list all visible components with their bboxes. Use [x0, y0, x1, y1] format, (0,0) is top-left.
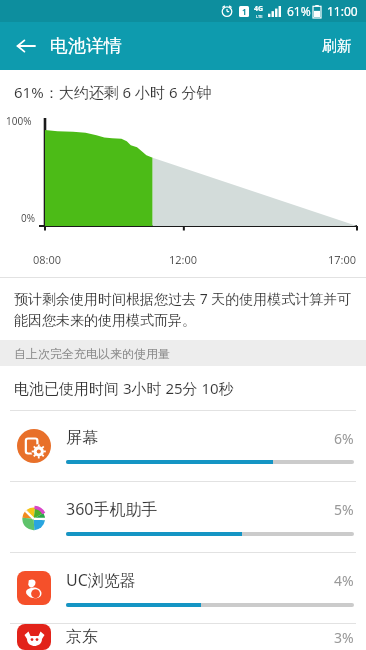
staticText: 12:00 [169, 252, 198, 267]
button[interactable]: 屏幕 [0, 411, 366, 481]
staticText: 6% [334, 429, 354, 448]
button[interactable]: UC浏览器 [0, 553, 366, 623]
staticText: UC浏览器 [66, 569, 334, 591]
staticText: 自上次完全充电以来的使用量 [14, 346, 170, 361]
staticText: 电池已使用时间 3小时 25分 10秒 [14, 378, 234, 398]
staticText: 4% [334, 571, 354, 590]
staticText: 电池详情 [50, 35, 122, 58]
staticText: 3% [334, 628, 354, 647]
staticText: 刷新 [322, 37, 352, 56]
staticText: LTE [256, 14, 263, 19]
staticText: 4G [254, 4, 264, 14]
staticText: 京东 [66, 627, 334, 647]
button[interactable]: 360手机助手 [0, 482, 366, 552]
staticText: 100% [6, 114, 32, 128]
staticText: 61% [287, 3, 311, 19]
staticText: 11:00 [327, 3, 358, 19]
staticText: 预计剩余使用时间根据您过去 7 天的使用模式计算并可能因您未来的使用模式而异。 [14, 289, 352, 329]
staticText: 360手机助手 [66, 498, 334, 520]
button[interactable]: 京东 [0, 624, 366, 650]
staticText: 08:00 [33, 252, 62, 267]
staticText: 61%：大约还剩 6 小时 6 分钟 [14, 82, 212, 102]
button[interactable]: 刷新 [308, 22, 366, 70]
button[interactable]: Back [6, 26, 46, 66]
staticText: 1 [242, 6, 247, 17]
staticText: 屏幕 [66, 428, 334, 448]
staticText: 5% [334, 500, 354, 519]
staticText: 0% [21, 211, 36, 225]
staticText: 17:00 [328, 252, 357, 267]
